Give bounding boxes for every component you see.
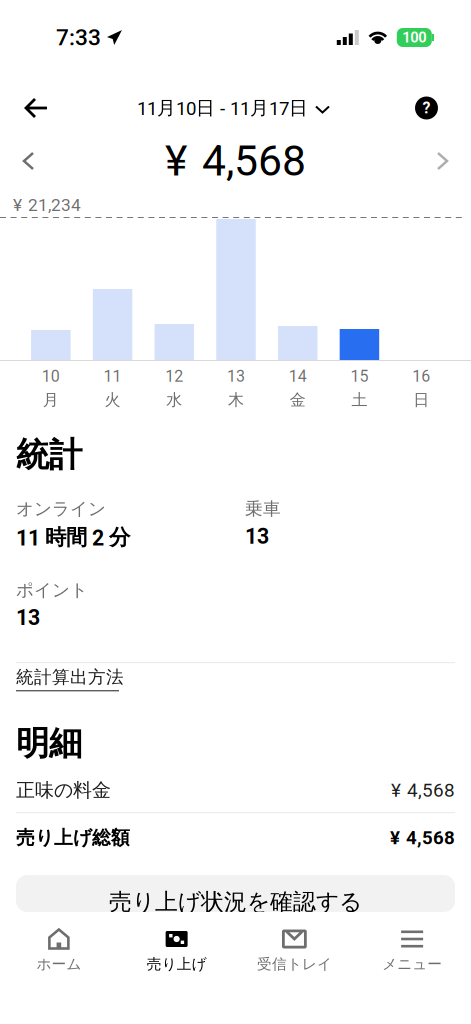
staticText: 14 bbox=[289, 367, 307, 386]
staticText: 月 bbox=[43, 390, 59, 410]
staticText: 木 bbox=[228, 390, 244, 410]
staticText: 13 bbox=[245, 524, 269, 549]
staticText: 7:33 bbox=[56, 24, 101, 51]
staticText: ホーム bbox=[36, 955, 81, 973]
staticText: メニュー bbox=[382, 955, 442, 973]
staticText: 売り上げ総額 bbox=[16, 826, 130, 850]
staticText: 土 bbox=[351, 390, 367, 410]
staticText: ¥ 4,568 bbox=[391, 779, 455, 801]
staticText: 日 bbox=[413, 390, 429, 410]
button[interactable]: Next week bbox=[422, 139, 463, 183]
staticText: 13 bbox=[227, 367, 245, 386]
staticText: ¥ 4,568 bbox=[165, 136, 306, 186]
button[interactable]: ホーム bbox=[0, 912, 118, 1024]
staticText: 16 bbox=[412, 367, 430, 386]
button[interactable]: 受信トレイ bbox=[235, 912, 353, 1024]
staticText: 10 bbox=[42, 367, 60, 386]
staticText: 火 bbox=[105, 390, 121, 410]
staticText: オンライン bbox=[16, 498, 106, 520]
staticText: 受信トレイ bbox=[257, 955, 332, 973]
button[interactable]: 11月10日 - 11月17日 bbox=[137, 85, 329, 131]
button[interactable]: Previous week bbox=[8, 139, 49, 183]
staticText: 乗車 bbox=[245, 498, 281, 520]
button[interactable]: 売り上げ bbox=[118, 912, 236, 1024]
staticText: 100 bbox=[402, 29, 426, 46]
staticText: 11月10日 - 11月17日 bbox=[137, 96, 308, 120]
staticText: 統計 bbox=[16, 434, 82, 476]
staticText: ポイント bbox=[16, 579, 88, 601]
staticText: 売り上げ状況を確認する bbox=[109, 888, 362, 916]
button[interactable]: Help bbox=[404, 84, 460, 131]
staticText: 水 bbox=[166, 390, 182, 410]
button[interactable]: Back bbox=[11, 85, 62, 131]
staticText: ? bbox=[422, 99, 430, 117]
staticText: ¥ 21,234 bbox=[13, 195, 81, 215]
staticText: 11 時間 2 分 bbox=[16, 524, 130, 551]
staticText: 売り上げ bbox=[147, 955, 207, 973]
staticText: 明細 bbox=[16, 722, 82, 764]
button[interactable]: メニュー bbox=[353, 912, 471, 1024]
staticText: 12 bbox=[165, 367, 183, 386]
staticText: 13 bbox=[16, 605, 40, 630]
button[interactable]: 売り上げ状況を確認する bbox=[0, 875, 471, 912]
staticText: ¥ 4,568 bbox=[390, 827, 455, 849]
staticText: 金 bbox=[290, 390, 306, 410]
staticText: 統計算出方法 bbox=[16, 666, 124, 688]
button[interactable]: 統計算出方法 bbox=[16, 663, 124, 691]
staticText: 15 bbox=[350, 367, 368, 386]
staticText: 正味の料金 bbox=[16, 778, 111, 802]
staticText: 11 bbox=[104, 367, 122, 386]
